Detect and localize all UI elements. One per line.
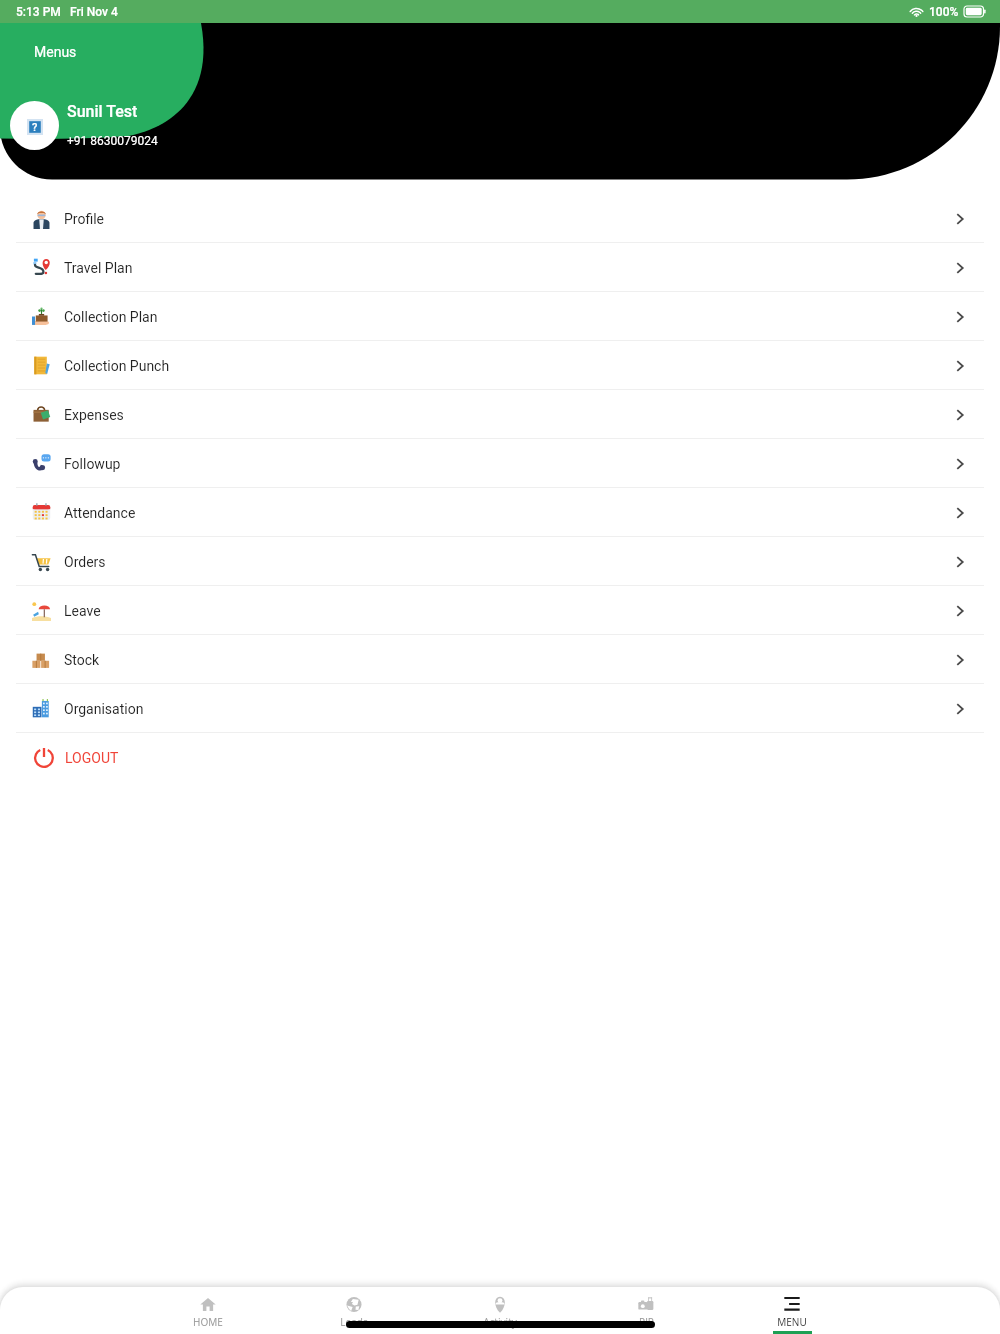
button[interactable]: Expenses bbox=[0, 390, 1000, 439]
staticText: Attendance bbox=[64, 505, 136, 521]
staticText: Orders bbox=[64, 554, 106, 570]
button[interactable]: Stock bbox=[0, 635, 1000, 684]
staticText: 5:13 PM bbox=[16, 5, 61, 19]
staticText: Travel Plan bbox=[64, 260, 133, 276]
staticText: PJP bbox=[639, 1315, 654, 1329]
staticText: Leave bbox=[64, 603, 101, 619]
staticText: Collection Plan bbox=[64, 309, 158, 325]
staticText: LOGOUT bbox=[65, 750, 119, 766]
button[interactable]: HOME bbox=[135, 1287, 281, 1334]
staticText: Expenses bbox=[64, 407, 124, 423]
staticText: Fri Nov 4 bbox=[70, 5, 118, 19]
button[interactable]: Leads bbox=[281, 1287, 427, 1334]
staticText: +91 8630079024 bbox=[67, 134, 158, 148]
button[interactable]: Profile photo bbox=[10, 101, 59, 150]
staticText: Profile bbox=[64, 211, 105, 227]
button[interactable]: Travel Plan bbox=[0, 243, 1000, 292]
staticText: Menus bbox=[34, 44, 77, 60]
staticText: 100% bbox=[929, 5, 959, 19]
staticText: MENU bbox=[777, 1315, 807, 1329]
staticText: Followup bbox=[64, 456, 121, 472]
staticText: Stock bbox=[64, 652, 100, 668]
button[interactable]: MENU bbox=[719, 1287, 865, 1334]
button[interactable]: Collection Punch bbox=[0, 341, 1000, 390]
button[interactable]: Leave bbox=[0, 586, 1000, 635]
button[interactable]: PJP bbox=[573, 1287, 719, 1334]
button[interactable]: Profile bbox=[0, 194, 1000, 243]
staticText: Activity bbox=[483, 1315, 517, 1329]
staticText: HOME bbox=[193, 1315, 223, 1329]
staticText: Organisation bbox=[64, 701, 144, 717]
button[interactable]: LOGOUT bbox=[0, 733, 1000, 782]
button[interactable]: Collection Plan bbox=[0, 292, 1000, 341]
staticText: ? bbox=[32, 121, 38, 134]
button[interactable]: Orders bbox=[0, 537, 1000, 586]
staticText: Collection Punch bbox=[64, 358, 170, 374]
button[interactable]: Followup bbox=[0, 439, 1000, 488]
button[interactable]: Organisation bbox=[0, 684, 1000, 733]
button[interactable]: Attendance bbox=[0, 488, 1000, 537]
staticText: Leads bbox=[340, 1315, 368, 1329]
staticText: Sunil Test bbox=[67, 102, 138, 121]
button[interactable]: Activity bbox=[427, 1287, 573, 1334]
